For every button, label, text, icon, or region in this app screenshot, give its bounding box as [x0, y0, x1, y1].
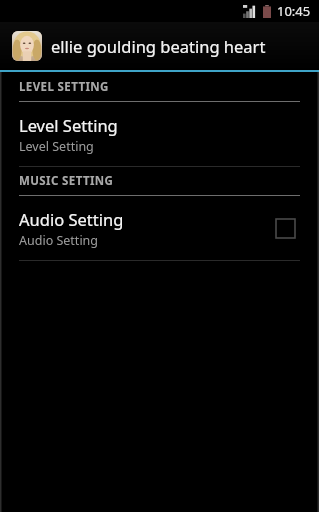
staticText: LEVEL SETTING [19, 79, 109, 95]
button[interactable]: Audio Setting checkbox [267, 210, 303, 246]
other: 3G signal [243, 5, 257, 18]
button[interactable]: Level Setting [0, 102, 319, 166]
other: Battery [263, 5, 271, 18]
staticText: Audio Setting [19, 232, 99, 249]
button[interactable]: ellie goulding beating heart [0, 22, 319, 70]
button[interactable]: Audio Setting [0, 196, 319, 260]
staticText: Level Setting [19, 138, 94, 155]
staticText: Level Setting [19, 114, 118, 136]
staticText: Audio Setting [19, 208, 124, 230]
staticText: 10:45 [277, 2, 311, 20]
staticText: MUSIC SETTING [19, 173, 114, 189]
staticText: ellie goulding beating heart [51, 35, 266, 57]
